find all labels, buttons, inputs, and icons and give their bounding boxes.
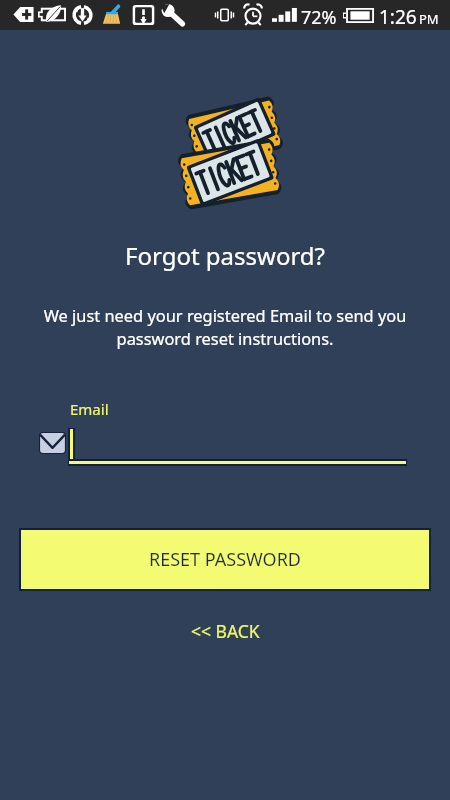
- staticText: We just need your registered Email to se…: [22, 304, 428, 350]
- staticText: RESET PASSWORD: [149, 547, 301, 572]
- staticText: Forgot password?: [0, 239, 450, 272]
- staticText: 72%: [301, 5, 337, 30]
- button[interactable]: Email input field: [36, 426, 410, 470]
- button[interactable]: RESET PASSWORD: [19, 528, 431, 591]
- staticText: 1:26: [379, 4, 417, 30]
- staticText: Email: [70, 399, 109, 419]
- button[interactable]: << BACK: [173, 612, 278, 650]
- staticText: << BACK: [191, 619, 260, 643]
- staticText: PM: [419, 10, 439, 28]
